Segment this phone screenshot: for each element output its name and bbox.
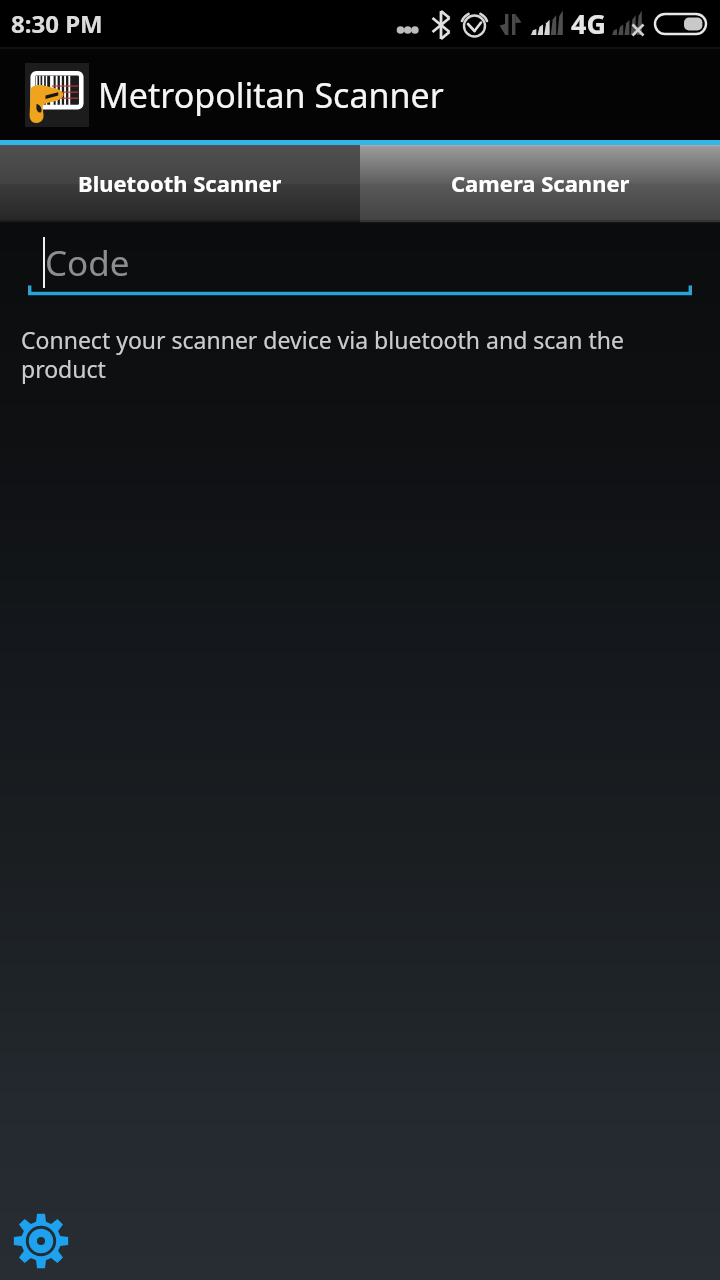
button[interactable]: Bluetooth Scanner <box>0 145 360 223</box>
staticText: 4G <box>571 5 606 42</box>
button[interactable]: Code <box>0 228 720 300</box>
staticText: 8:30 PM <box>11 7 103 40</box>
staticText: Connect your scanner device via bluetoot… <box>21 324 660 385</box>
button[interactable]: Settings <box>5 1205 77 1277</box>
staticText: Code <box>45 239 130 287</box>
button[interactable]: Camera Scanner <box>360 145 720 223</box>
staticText: Camera Scanner <box>451 168 630 198</box>
staticText: Bluetooth Scanner <box>78 168 282 198</box>
staticText: Metropolitan Scanner <box>98 72 444 118</box>
